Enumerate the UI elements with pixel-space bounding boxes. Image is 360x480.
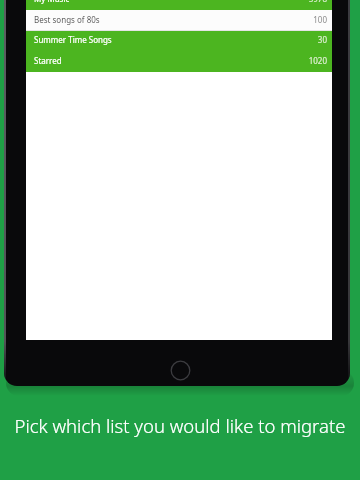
staticText: Summer Time Songs [34, 34, 112, 45]
staticText: My Music [34, 0, 70, 4]
button[interactable]: Summer Time Songs [26, 31, 332, 51]
staticText: 1020 [308, 55, 327, 66]
staticText: Starred [34, 55, 62, 66]
button[interactable]: Home [170, 360, 191, 381]
staticText: Best songs of 80s [34, 14, 100, 25]
staticText: 5978 [308, 0, 327, 4]
button[interactable]: My Music [26, 0, 332, 10]
staticText: 100 [313, 14, 327, 25]
button[interactable]: Best songs of 80s [26, 10, 332, 31]
staticText: 30 [317, 34, 327, 45]
staticText: Pick which list you would like to migrat… [10, 413, 350, 438]
button[interactable]: Starred [26, 51, 332, 72]
